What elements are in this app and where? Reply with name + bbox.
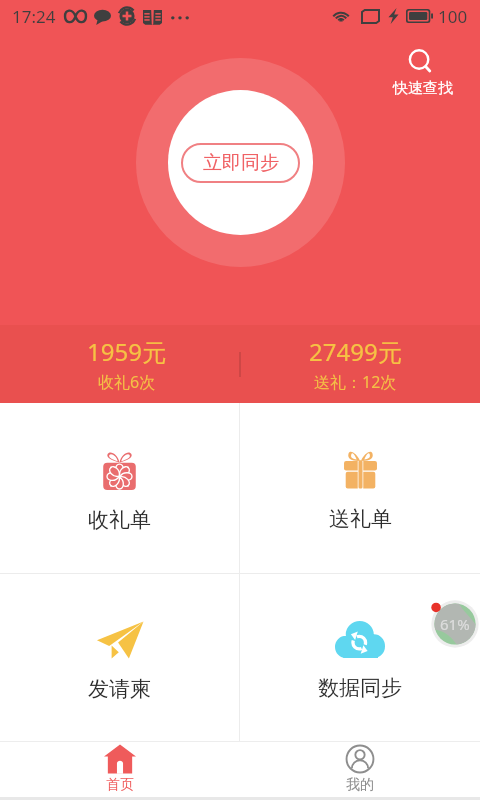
button[interactable]: 送礼单 — [240, 403, 480, 573]
staticText: 1959元 — [87, 335, 166, 368]
staticText: 61% — [440, 614, 470, 634]
staticText: 数据同步 — [318, 675, 402, 701]
staticText: 17:24 — [12, 5, 56, 28]
staticText: 送礼：12次 — [314, 371, 397, 393]
staticText: 我的 — [346, 776, 374, 794]
button[interactable]: 发请柬 — [0, 574, 239, 741]
staticText: 送礼单 — [329, 506, 392, 532]
button[interactable]: 1959元 — [7, 325, 246, 403]
staticText: 收礼单 — [88, 507, 151, 533]
button[interactable]: 我的 — [240, 741, 480, 797]
button[interactable]: 收礼单 — [0, 403, 239, 573]
button[interactable]: 27499元 — [236, 325, 475, 403]
staticText: 立即同步 — [203, 151, 279, 175]
staticText: 快速查找 — [393, 79, 453, 98]
button[interactable]: 快速查找 — [389, 48, 456, 98]
staticText: 收礼6次 — [98, 371, 156, 393]
staticText: 发请柬 — [88, 676, 151, 702]
staticText: 27499元 — [309, 335, 402, 368]
staticText: 首页 — [106, 776, 134, 794]
button[interactable]: 立即同步 — [168, 90, 313, 235]
button[interactable]: 数据同步 — [240, 574, 480, 741]
button[interactable]: 电量 61% — [429, 598, 480, 650]
button[interactable]: 首页 — [0, 741, 240, 797]
staticText: 100 — [438, 5, 468, 28]
